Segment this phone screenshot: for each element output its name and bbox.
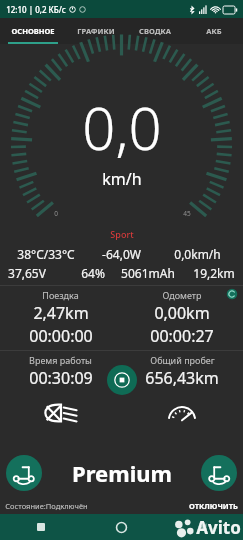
staticText: ГРАФИКИ	[77, 26, 115, 36]
staticText: 37,65V	[8, 265, 46, 281]
button[interactable]: Recents	[0, 514, 81, 540]
staticText: 12:10 | 0,2 КБ/с	[6, 4, 66, 15]
staticText: 5061mAh	[121, 265, 175, 281]
staticText: Общий пробег	[150, 354, 215, 366]
staticText: Время работы	[29, 354, 92, 366]
button[interactable]: СВОДКА	[125, 18, 184, 44]
staticText: km/h	[102, 168, 142, 190]
button[interactable]: Premium scooter	[201, 455, 237, 491]
button[interactable]: АКБ	[184, 18, 243, 44]
button[interactable]: Поездка	[0, 289, 121, 347]
staticText: 19,2km	[193, 265, 235, 281]
staticText: 0,0km/h	[174, 246, 221, 262]
button[interactable]: Premium scooter	[0, 448, 243, 498]
staticText: Состояние:Подключён	[5, 501, 88, 511]
staticText: 64%	[81, 265, 105, 281]
staticText: Одометр	[162, 289, 202, 301]
staticText: ОТКЛЮЧИТЬ	[189, 501, 238, 511]
staticText: 656,43km	[145, 367, 219, 389]
button[interactable]: Время работы	[0, 354, 121, 389]
button[interactable]: Headlight off	[0, 397, 121, 429]
button[interactable]: Cruise control	[121, 397, 243, 429]
button[interactable]: Home	[81, 514, 162, 540]
staticText: Поездка	[42, 289, 79, 301]
staticText: ОСНОВНОЕ	[11, 26, 55, 36]
button[interactable]: Start recording	[107, 365, 137, 395]
staticText: 00:00:27	[150, 325, 214, 347]
button[interactable]: Одометр	[121, 289, 243, 347]
staticText: 2,47km	[33, 302, 89, 324]
staticText: СВОДКА	[139, 26, 171, 36]
button[interactable]: Back	[162, 514, 243, 540]
staticText: Sport	[110, 228, 134, 240]
staticText: 00:00:00	[29, 325, 93, 347]
staticText: 0,0	[82, 88, 162, 167]
staticText: 45	[183, 209, 191, 218]
staticText: 0	[54, 209, 58, 218]
staticText: 0,00km	[154, 302, 210, 324]
button[interactable]: ОТКЛЮЧИТЬ	[184, 498, 243, 514]
staticText: АКБ	[206, 26, 222, 36]
button[interactable]: ОСНОВНОЕ	[0, 18, 66, 44]
staticText: Premium	[72, 458, 172, 488]
staticText: -64,0W	[102, 246, 141, 262]
staticText: 00:30:09	[29, 367, 93, 389]
staticText: Avito	[196, 516, 241, 539]
button[interactable]: Общий пробег	[121, 354, 243, 389]
button[interactable]: Reset trip	[226, 288, 238, 300]
button[interactable]: Premium scooter	[6, 455, 42, 491]
staticText: 38°C/33°C	[17, 246, 75, 262]
button[interactable]: ГРАФИКИ	[66, 18, 125, 44]
